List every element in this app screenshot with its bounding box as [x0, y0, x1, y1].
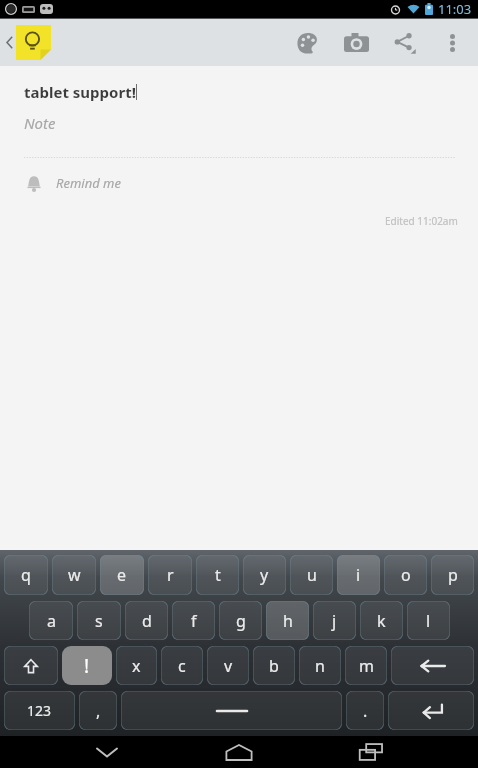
- button[interactable]: o: [384, 555, 427, 595]
- button[interactable]: v: [207, 646, 249, 685]
- button[interactable]: Take photo: [332, 19, 380, 66]
- button[interactable]: q: [4, 555, 48, 595]
- staticText: Note: [24, 113, 56, 133]
- button[interactable]: x: [116, 646, 157, 685]
- button[interactable]: Change color: [284, 19, 332, 66]
- staticText: s: [95, 610, 103, 632]
- button[interactable]: Navigate up: [0, 19, 56, 66]
- staticText: q: [21, 564, 31, 586]
- button[interactable]: .: [346, 691, 384, 730]
- button[interactable]: Backspace: [391, 646, 474, 685]
- button[interactable]: t: [196, 555, 239, 595]
- staticText: d: [142, 610, 152, 632]
- button[interactable]: Shift: [4, 646, 58, 685]
- staticText: c: [178, 655, 186, 677]
- staticText: r: [167, 564, 174, 586]
- button[interactable]: s: [77, 601, 121, 640]
- button[interactable]: b: [253, 646, 295, 685]
- button[interactable]: Share: [380, 19, 428, 66]
- button[interactable]: p: [431, 555, 474, 595]
- staticText: !: [84, 653, 90, 679]
- button[interactable]: Remind me: [0, 170, 478, 196]
- button[interactable]: tablet support!: [24, 82, 137, 102]
- staticText: t: [215, 564, 221, 586]
- staticText: h: [283, 610, 293, 632]
- button[interactable]: y: [243, 555, 286, 595]
- staticText: ,: [96, 700, 101, 722]
- button[interactable]: Note: [24, 113, 56, 133]
- staticText: tablet support!: [24, 82, 136, 102]
- button[interactable]: i: [337, 555, 380, 595]
- staticText: y: [260, 564, 269, 586]
- button[interactable]: Hide keyboard: [75, 736, 139, 768]
- button[interactable]: h: [266, 601, 309, 640]
- staticText: o: [401, 564, 411, 586]
- staticText: Edited 11:02am: [385, 214, 458, 228]
- staticText: l: [426, 610, 431, 632]
- staticText: m: [359, 655, 374, 677]
- button[interactable]: c: [161, 646, 203, 685]
- button[interactable]: k: [360, 601, 403, 640]
- button[interactable]: j: [313, 601, 356, 640]
- staticText: a: [47, 610, 56, 632]
- staticText: 123: [27, 701, 52, 720]
- button[interactable]: 123: [4, 691, 75, 730]
- staticText: e: [117, 564, 127, 586]
- button[interactable]: a: [29, 601, 73, 640]
- button[interactable]: w: [52, 555, 96, 595]
- staticText: .: [363, 700, 368, 722]
- button[interactable]: Enter: [388, 691, 474, 730]
- button[interactable]: Space: [121, 691, 342, 730]
- staticText: n: [315, 655, 325, 677]
- staticText: i: [356, 564, 361, 586]
- button[interactable]: d: [125, 601, 168, 640]
- staticText: x: [132, 655, 141, 677]
- button[interactable]: !: [62, 646, 112, 685]
- button[interactable]: Recent apps: [339, 736, 403, 768]
- button[interactable]: u: [290, 555, 333, 595]
- button[interactable]: n: [299, 646, 341, 685]
- button[interactable]: g: [219, 601, 262, 640]
- staticText: p: [448, 564, 458, 586]
- staticText: v: [224, 655, 233, 677]
- button[interactable]: m: [345, 646, 387, 685]
- button[interactable]: r: [148, 555, 192, 595]
- staticText: k: [377, 610, 386, 632]
- button[interactable]: e: [100, 555, 144, 595]
- staticText: u: [307, 564, 317, 586]
- button[interactable]: l: [407, 601, 450, 640]
- staticText: g: [236, 610, 246, 632]
- button[interactable]: Home: [207, 736, 271, 768]
- staticText: 11:03: [438, 0, 472, 18]
- staticText: Remind me: [56, 174, 121, 192]
- button[interactable]: f: [172, 601, 215, 640]
- button[interactable]: More options: [428, 19, 476, 66]
- staticText: b: [269, 655, 279, 677]
- staticText: j: [332, 610, 337, 632]
- staticText: f: [191, 610, 197, 632]
- button[interactable]: ,: [79, 691, 117, 730]
- staticText: w: [68, 564, 81, 586]
